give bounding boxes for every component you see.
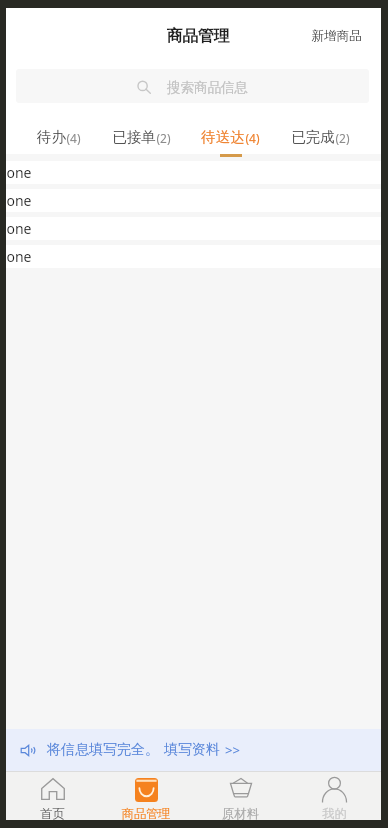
button[interactable]: one [6,245,381,268]
button[interactable]: 已接单 [112,103,171,154]
button[interactable]: Profile [287,772,381,820]
staticText: 将信息填写完全。 [47,741,159,759]
staticText: >> [225,741,240,759]
button[interactable]: Materials [193,772,287,820]
other: Materials [230,778,252,799]
button[interactable]: 待送达 [201,103,260,154]
staticText: one [6,219,32,238]
staticText: 填写资料 [164,741,220,759]
staticText: 商品管理 [166,26,230,46]
other: Search [137,80,151,94]
staticText: (4) [66,130,81,146]
staticText: 商品管理 [121,806,171,820]
staticText: 首页 [40,806,65,820]
staticText: 待办 [37,128,66,146]
other: Home [41,778,65,800]
staticText: 搜索商品信息 [167,79,248,96]
staticText: 已接单 [112,128,156,146]
button[interactable]: 新增商品 [299,18,381,52]
staticText: 新增商品 [311,28,362,44]
staticText: 已完成 [291,128,335,146]
button[interactable]: Home [6,772,99,820]
staticText: one [6,163,32,182]
staticText: 待送达 [201,128,245,146]
staticText: 原材料 [222,806,259,820]
button[interactable]: one [6,217,381,240]
button[interactable]: one [6,161,381,184]
button[interactable]: Products [99,772,193,820]
button[interactable]: 已完成 [291,103,350,154]
other: Products [135,778,158,802]
button[interactable]: Search [16,69,369,103]
staticText: one [6,191,32,210]
staticText: (4) [245,130,260,146]
button[interactable]: 待办 [37,103,81,154]
staticText: 我的 [322,806,347,820]
button[interactable]: one [6,189,381,212]
staticText: (2) [335,130,350,146]
staticText: one [6,247,32,266]
button[interactable]: Announcement [6,729,381,771]
other: Profile [322,778,347,802]
other: Announcement [20,745,35,756]
staticText: (2) [156,130,171,146]
